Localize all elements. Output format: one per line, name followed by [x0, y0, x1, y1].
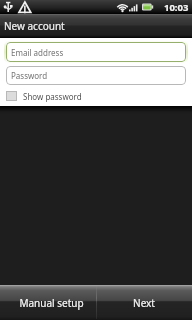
staticText: Next	[133, 296, 155, 310]
staticText: New account	[4, 19, 65, 33]
button[interactable]: Show password	[0, 89, 192, 103]
staticText: Email address	[11, 47, 64, 58]
staticText: 10:03	[164, 1, 189, 14]
button[interactable]: Manual setup	[0, 285, 96, 320]
staticText: Password	[11, 70, 48, 81]
button[interactable]: Next	[96, 285, 192, 320]
staticText: Manual setup	[19, 296, 84, 310]
button[interactable]: Email address	[6, 42, 186, 62]
staticText: Show password	[23, 91, 82, 102]
button[interactable]: Password	[6, 66, 186, 85]
